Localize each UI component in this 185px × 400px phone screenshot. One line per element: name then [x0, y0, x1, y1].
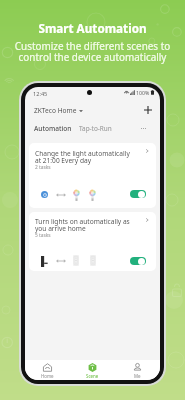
button[interactable]: Home: [25, 360, 70, 380]
staticText: Tap-to-Run: [79, 124, 112, 133]
button[interactable]: Turn lights on automatically as: [29, 212, 156, 271]
staticText: at 21:00 Every day: [35, 156, 92, 165]
button[interactable]: Automation: [34, 124, 72, 133]
button[interactable]: Toggle automation: [130, 257, 146, 265]
staticText: Scene: [86, 373, 99, 379]
staticText: Customize the different scenes to contro…: [4, 39, 181, 64]
staticText: 2 tasks: [35, 164, 51, 171]
staticText: Automation: [34, 124, 72, 133]
button[interactable]: ZKTeco Home: [34, 106, 83, 115]
button[interactable]: Scene: [70, 360, 115, 380]
button[interactable]: Toggle automation: [130, 190, 146, 198]
staticText: Me: [134, 373, 141, 379]
button[interactable]: More options: [137, 122, 150, 135]
staticText: Smart Automation: [38, 20, 147, 36]
staticText: 5 tasks: [35, 232, 51, 239]
button[interactable]: Change the light automatically: [29, 143, 156, 208]
staticText: you arrive home: [35, 224, 86, 233]
staticText: ZKTeco Home: [34, 106, 77, 115]
staticText: 100%: [136, 89, 150, 96]
staticText: 12:45: [33, 90, 48, 98]
staticText: Home: [41, 373, 54, 379]
staticText: Turn lights on automatically as: [35, 217, 130, 226]
button[interactable]: Add automation: [141, 103, 155, 117]
button[interactable]: Me: [115, 360, 160, 380]
staticText: Change the light automatically: [35, 149, 130, 158]
button[interactable]: Tap-to-Run: [79, 124, 112, 133]
